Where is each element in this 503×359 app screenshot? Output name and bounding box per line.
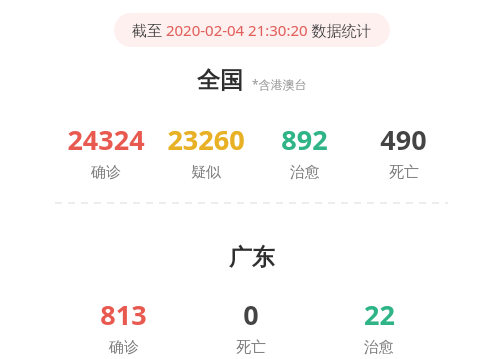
staticText: 确诊 [109,338,139,357]
button[interactable]: 490 [354,121,453,182]
staticText: 22 [364,296,395,333]
staticText: 892 [281,121,328,158]
staticText: 0 [243,296,259,333]
staticText: 疑似 [191,163,221,182]
button[interactable]: 813 [60,296,187,357]
staticText: 全国 [197,66,243,95]
button[interactable]: 截至 2020-02-04 21:30:20 数据统计 [114,13,390,47]
staticText: 24324 [67,121,145,158]
staticText: 广东 [229,243,275,272]
staticText: 确诊 [91,163,121,182]
staticText: *含港澳台 [252,76,307,92]
staticText: 死亡 [236,338,266,357]
button[interactable]: 22 [315,296,443,357]
staticText: 490 [380,121,427,158]
staticText: 死亡 [389,163,419,182]
button[interactable]: 23260 [156,121,255,182]
button[interactable]: 24324 [56,121,156,182]
staticText: 813 [100,296,147,333]
staticText: 治愈 [290,163,320,182]
staticText: 23260 [167,121,245,158]
button[interactable]: 0 [187,296,315,357]
staticText: 治愈 [364,338,394,357]
staticText: 截至 2020-02-04 21:30:20 数据统计 [132,20,372,40]
button[interactable]: 892 [255,121,354,182]
